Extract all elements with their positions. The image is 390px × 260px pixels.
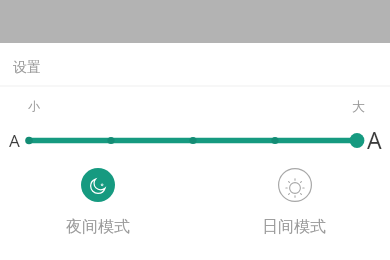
staticText: 日间模式 bbox=[262, 217, 326, 237]
button[interactable]: 夜间模式 bbox=[57, 168, 139, 237]
staticText: A bbox=[367, 124, 382, 155]
staticText: 夜间模式 bbox=[66, 217, 130, 237]
button[interactable]: 字体大小 bbox=[0, 126, 390, 154]
button[interactable]: 日间模式 bbox=[253, 168, 335, 237]
staticText: 小 bbox=[28, 98, 40, 113]
staticText: 设置 bbox=[13, 59, 41, 77]
staticText: 大 bbox=[352, 98, 365, 114]
staticText: A bbox=[9, 129, 20, 152]
